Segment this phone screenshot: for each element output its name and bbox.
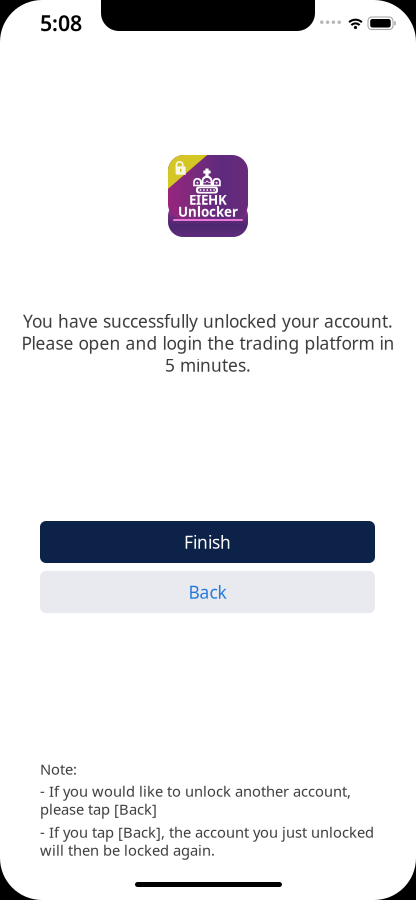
staticText: 5 minutes. (165, 353, 251, 376)
staticText: Finish (184, 530, 231, 553)
staticText: You have successfully unlocked your acco… (23, 309, 393, 332)
staticText: 5:08 (40, 9, 82, 37)
staticText: EIEHK (189, 191, 227, 208)
staticText: - If you tap [Back], the account you jus… (40, 822, 374, 842)
staticText: Note: (40, 759, 77, 779)
staticText: will then be locked again. (40, 840, 215, 860)
button[interactable]: Finish (40, 521, 375, 563)
button[interactable]: Back (40, 571, 375, 613)
staticText: Please open and login the trading platfo… (21, 331, 394, 354)
staticText: please tap [Back] (40, 799, 157, 819)
staticText: - If you would like to unlock another ac… (40, 781, 351, 801)
staticText: Unlocker (178, 203, 238, 220)
staticText: Back (188, 580, 226, 603)
